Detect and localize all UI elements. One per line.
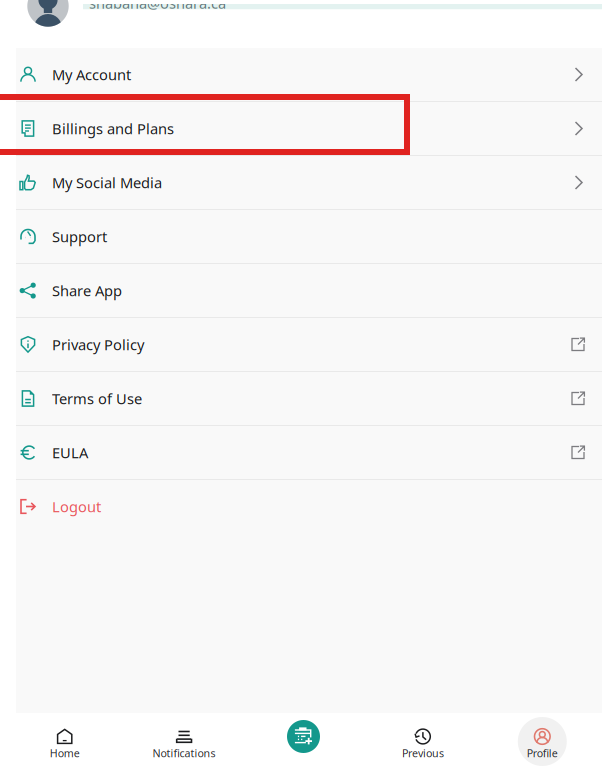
- button[interactable]: Support: [16, 210, 602, 263]
- button[interactable]: Billings and Plans: [16, 102, 602, 155]
- button[interactable]: Logout: [16, 480, 602, 533]
- staticText: Profile: [527, 746, 558, 760]
- button[interactable]: My Social Media: [16, 156, 602, 209]
- button[interactable]: My Account: [16, 48, 602, 101]
- button[interactable]: Previous: [363, 713, 483, 766]
- staticText: shabana@oshara.ca: [89, 0, 226, 13]
- staticText: Notifications: [153, 746, 216, 760]
- staticText: My Social Media: [52, 173, 162, 192]
- button[interactable]: New entry: [244, 713, 363, 766]
- button[interactable]: Notifications: [124, 713, 244, 766]
- button[interactable]: Share App: [16, 264, 602, 317]
- button[interactable]: Terms of Use: [16, 372, 602, 425]
- staticText: Terms of Use: [52, 389, 142, 408]
- staticText: My Account: [52, 65, 131, 84]
- staticText: Privacy Policy: [52, 335, 144, 354]
- staticText: Logout: [52, 497, 101, 516]
- button[interactable]: EULA: [16, 426, 602, 479]
- staticText: Billings and Plans: [52, 119, 174, 138]
- staticText: Share App: [52, 281, 122, 300]
- staticText: Home: [50, 746, 80, 760]
- button[interactable]: Home: [5, 713, 124, 766]
- staticText: EULA: [52, 443, 88, 462]
- button[interactable]: Privacy Policy: [16, 318, 602, 371]
- button[interactable]: Profile: [483, 713, 602, 766]
- staticText: Previous: [402, 746, 444, 760]
- staticText: Support: [52, 227, 107, 246]
